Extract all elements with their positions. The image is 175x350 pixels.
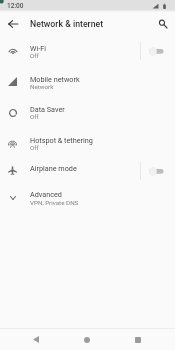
- staticText: Mobile network: [30, 75, 80, 83]
- staticText: Off: [30, 113, 39, 120]
- staticText: Airplane mode: [30, 164, 77, 172]
- staticText: 12:00: [7, 2, 24, 10]
- button[interactable]: [0, 36, 175, 67]
- button[interactable]: Toggle Airplane mode: [145, 163, 171, 179]
- staticText: Hotspot & tethering: [30, 136, 93, 144]
- button[interactable]: [0, 97, 175, 128]
- staticText: VPN, Private DNS: [30, 199, 79, 206]
- button[interactable]: Back: [0, 11, 25, 36]
- button[interactable]: [0, 183, 175, 214]
- staticText: Network: [30, 83, 54, 90]
- staticText: Off: [30, 52, 39, 59]
- button[interactable]: [0, 128, 175, 159]
- staticText: Network & internet: [30, 19, 104, 29]
- button[interactable]: [0, 66, 175, 97]
- button[interactable]: Toggle Wi-Fi: [145, 43, 171, 59]
- staticText: Off: [30, 144, 39, 151]
- staticText: Wi-Fi: [30, 44, 46, 52]
- staticText: Advanced: [30, 190, 62, 198]
- button[interactable]: Back: [26, 329, 46, 349]
- button[interactable]: [0, 159, 175, 183]
- button[interactable]: Recents: [128, 330, 148, 350]
- button[interactable]: Search: [151, 12, 175, 36]
- button[interactable]: Home: [77, 330, 97, 350]
- staticText: Data Saver: [30, 105, 65, 113]
